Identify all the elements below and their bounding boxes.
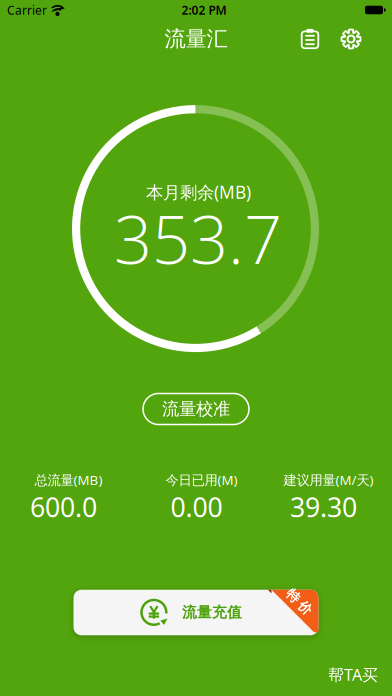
staticText: 0.00 (170, 489, 222, 525)
button[interactable]: 流量校准 (143, 393, 249, 424)
staticText: 353.7 (114, 184, 282, 292)
staticText: 39.30 (290, 489, 357, 525)
staticText: 2:02 PM (181, 2, 226, 18)
staticText: 600.0 (30, 489, 97, 525)
staticText: 建议用量(M/天) (283, 471, 373, 489)
staticText: 今日已用(M) (165, 471, 237, 489)
button[interactable]: Usage records (301, 29, 319, 49)
button[interactable]: Settings (341, 29, 361, 49)
staticText: 流量校准 (162, 398, 230, 420)
staticText: 总流量(MB) (34, 471, 102, 489)
staticText: 本月剩余(MB) (146, 180, 251, 203)
staticText: 帮TA买 (328, 664, 378, 685)
button[interactable]: 特价 (73, 590, 318, 636)
staticText: 流量汇 (164, 26, 227, 52)
button[interactable]: 帮TA买 (328, 664, 378, 685)
staticText: 流量充值 (182, 603, 242, 621)
staticText: Carrier (7, 2, 47, 18)
staticText: 特价 (284, 594, 314, 610)
